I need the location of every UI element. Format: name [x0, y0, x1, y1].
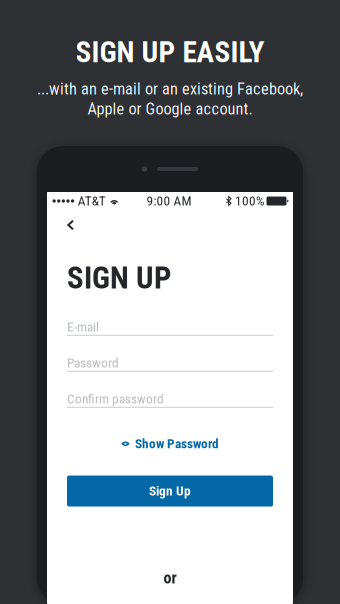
staticText: SIGN UP EASILY [75, 35, 264, 69]
staticText: Apple or Google account. [87, 99, 252, 118]
staticText: Sign Up [149, 483, 191, 499]
staticText: SIGN UP [67, 260, 171, 296]
staticText: or [163, 569, 176, 587]
button[interactable]: Back [47, 211, 88, 239]
staticText: Password [67, 355, 119, 371]
staticText: 9:00 AM [146, 193, 191, 209]
button[interactable]: Sign Up [67, 476, 273, 507]
staticText: Show Password [135, 436, 219, 451]
staticText: ...with an e-mail or an existing Faceboo… [37, 79, 303, 98]
staticText: 100% [235, 193, 264, 209]
staticText: AT&T [78, 193, 106, 209]
staticText: Confirm password [67, 391, 164, 407]
staticText: E-mail [67, 319, 99, 335]
button[interactable]: Show Password [67, 430, 273, 457]
